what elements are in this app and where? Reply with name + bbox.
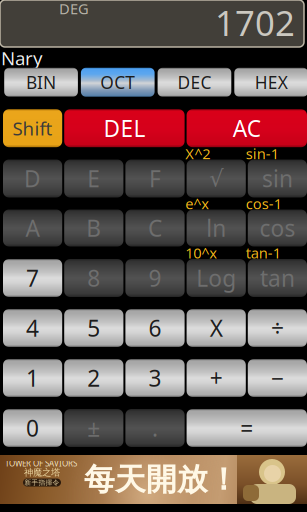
button[interactable]: Shift (3, 109, 62, 147)
button[interactable]: − (248, 359, 307, 397)
staticText: 神魔之塔 (24, 467, 60, 478)
button[interactable]: 9 (125, 259, 185, 297)
button[interactable]: F (125, 159, 185, 197)
button[interactable]: A (3, 209, 62, 246)
staticText: AC (233, 113, 261, 143)
staticText: tan (260, 263, 295, 293)
staticText: 7 (26, 263, 39, 293)
staticText: sin (262, 163, 293, 193)
button[interactable]: DEL (64, 109, 185, 147)
button[interactable]: AC (187, 109, 307, 147)
button[interactable]: D (3, 159, 62, 197)
button[interactable]: 4 (3, 309, 62, 347)
button[interactable]: tan (248, 259, 307, 297)
staticText: D (24, 163, 41, 193)
button[interactable]: 0 (3, 409, 62, 447)
staticText: = (240, 413, 253, 443)
staticText: Log (196, 263, 236, 293)
staticText: Nary (1, 46, 43, 70)
staticText: E (87, 163, 100, 193)
button[interactable]: E (64, 159, 123, 197)
button[interactable]: + (187, 359, 246, 397)
button[interactable]: B (64, 209, 123, 246)
button[interactable]: ÷ (248, 309, 307, 347)
staticText: 8 (87, 263, 100, 293)
staticText: A (26, 213, 40, 243)
staticText: ± (87, 413, 100, 443)
button[interactable]: cos (248, 209, 307, 246)
staticText: tan-1 (246, 243, 281, 262)
button[interactable]: DEC (158, 68, 231, 97)
staticText: 3 (148, 363, 161, 393)
staticText: F (149, 163, 161, 193)
button[interactable]: = (187, 409, 307, 447)
staticText: BIN (26, 71, 56, 94)
staticText: TOWER OF SAVIORS (5, 458, 77, 469)
staticText: DEC (177, 71, 211, 94)
staticText: cos-1 (246, 194, 282, 213)
button[interactable]: ln (187, 209, 246, 246)
staticText: ÷ (271, 313, 284, 343)
button[interactable]: sin (248, 159, 307, 197)
staticText: √ (209, 166, 223, 191)
staticText: ln (206, 213, 226, 243)
staticText: DEG (59, 0, 89, 18)
staticText: HEX (255, 71, 288, 94)
button[interactable]: ± (64, 409, 123, 447)
staticText: DEL (103, 113, 145, 143)
staticText: Shift (13, 116, 53, 141)
staticText: C (148, 213, 162, 243)
staticText: 1 (26, 363, 39, 393)
staticText: e^x (185, 194, 209, 213)
staticText: 每天開放！ (84, 461, 239, 498)
staticText: cos (259, 213, 295, 243)
staticText: sin-1 (246, 144, 279, 163)
staticText: B (86, 213, 101, 243)
button[interactable]: OCT (81, 68, 155, 97)
staticText: 2 (87, 363, 100, 393)
button[interactable]: 3 (125, 359, 185, 397)
button[interactable]: . (125, 409, 185, 447)
staticText: 1702 (215, 0, 295, 45)
button[interactable]: 7 (3, 259, 62, 297)
button[interactable]: 5 (64, 309, 123, 347)
staticText: 9 (148, 263, 161, 293)
button[interactable]: HEX (234, 68, 307, 97)
button[interactable]: BIN (4, 68, 78, 97)
staticText: 10^x (185, 243, 217, 262)
button[interactable]: Log (187, 259, 246, 297)
button[interactable]: 1 (3, 359, 62, 397)
button[interactable]: 2 (64, 359, 123, 397)
staticText: 0 (26, 413, 39, 443)
staticText: 4 (26, 313, 39, 343)
staticText: − (271, 363, 284, 393)
staticText: . (152, 413, 158, 443)
staticText: X (210, 313, 223, 343)
staticText: + (210, 363, 223, 393)
staticText: 5 (87, 313, 100, 343)
button[interactable]: 6 (125, 309, 185, 347)
staticText: OCT (100, 71, 135, 94)
staticText: X^2 (185, 144, 210, 163)
staticText: 新手指揮令 (24, 478, 59, 487)
staticText: 6 (148, 313, 161, 343)
button[interactable]: √ (187, 159, 246, 197)
button[interactable]: 8 (64, 259, 123, 297)
button[interactable]: Advertisement: Tower of Saviors (0, 455, 307, 504)
button[interactable]: X (187, 309, 246, 347)
button[interactable]: C (125, 209, 185, 246)
